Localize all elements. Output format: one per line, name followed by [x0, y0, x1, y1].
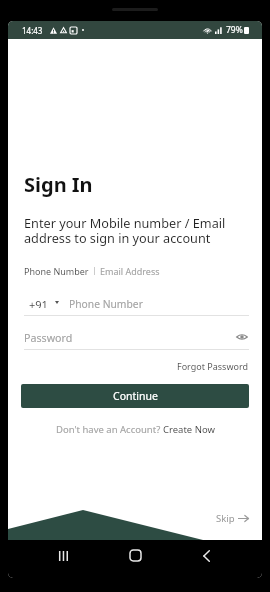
staticText: Continue	[113, 389, 158, 403]
staticText: Email Address	[100, 265, 160, 277]
staticText: Create Now	[163, 423, 215, 436]
button[interactable]: Show password	[235, 331, 249, 342]
staticText: Password	[24, 331, 73, 342]
button[interactable]: Email Address	[100, 265, 160, 277]
button[interactable]: Home	[123, 543, 148, 568]
staticText: Forgot Password	[177, 360, 249, 372]
staticText: Don't have an Account?	[56, 423, 163, 436]
staticText: Phone Number	[69, 297, 143, 308]
staticText: Sign In	[24, 171, 93, 198]
button[interactable]: Create Now	[163, 423, 215, 436]
button[interactable]: Recent apps	[51, 543, 76, 568]
staticText: Phone Number	[24, 265, 89, 277]
staticText: 79%	[226, 24, 243, 36]
button[interactable]: Phone Number	[24, 265, 89, 277]
button[interactable]: Continue	[21, 384, 249, 408]
staticText: 14:43	[22, 25, 43, 36]
staticText: Enter your Mobile number / Email address…	[24, 214, 226, 247]
button[interactable]: Skip	[216, 512, 249, 525]
staticText: +91	[29, 297, 48, 308]
staticText: Skip	[216, 512, 235, 525]
button[interactable]: Forgot Password	[177, 360, 249, 372]
button[interactable]: Back	[194, 543, 219, 568]
